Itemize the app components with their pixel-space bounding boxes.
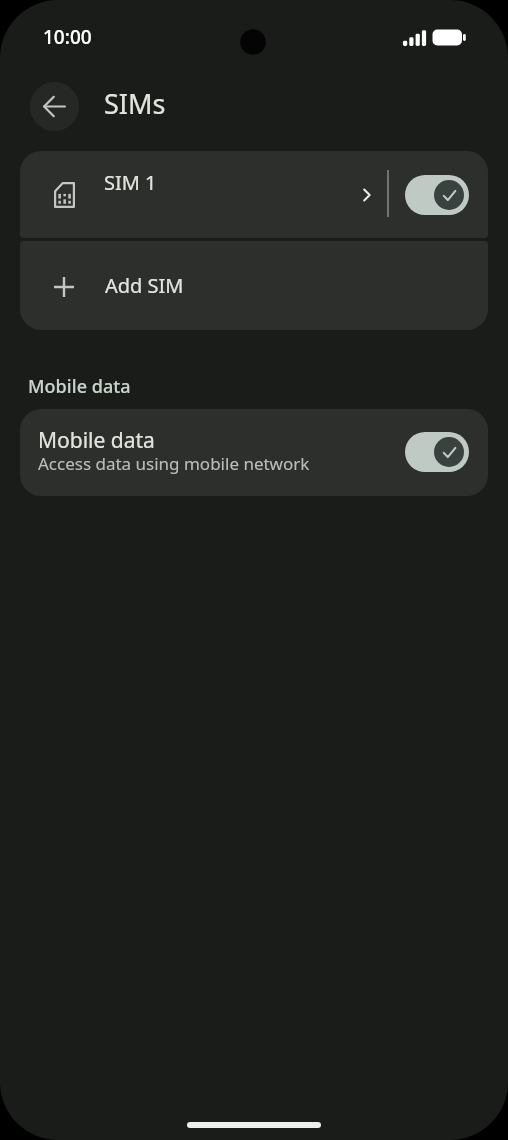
button[interactable]: Mobile data — [20, 409, 488, 496]
button[interactable]: Add SIM — [20, 241, 488, 330]
staticText: Add SIM — [105, 272, 184, 299]
button[interactable]: Toggle SIM 1 — [405, 175, 469, 215]
staticText: 10:00 — [43, 24, 92, 50]
staticText: Mobile data — [38, 426, 155, 455]
button[interactable]: SIM 1 details — [354, 183, 378, 207]
staticText: SIM 1 — [104, 169, 157, 196]
staticText: SIMs — [104, 85, 166, 122]
staticText: Access data using mobile network — [38, 452, 310, 475]
button[interactable]: Back — [30, 82, 79, 131]
button[interactable]: SIM 1 — [20, 151, 488, 238]
staticText: Mobile data — [28, 374, 131, 399]
button[interactable]: Toggle mobile data — [405, 432, 469, 472]
